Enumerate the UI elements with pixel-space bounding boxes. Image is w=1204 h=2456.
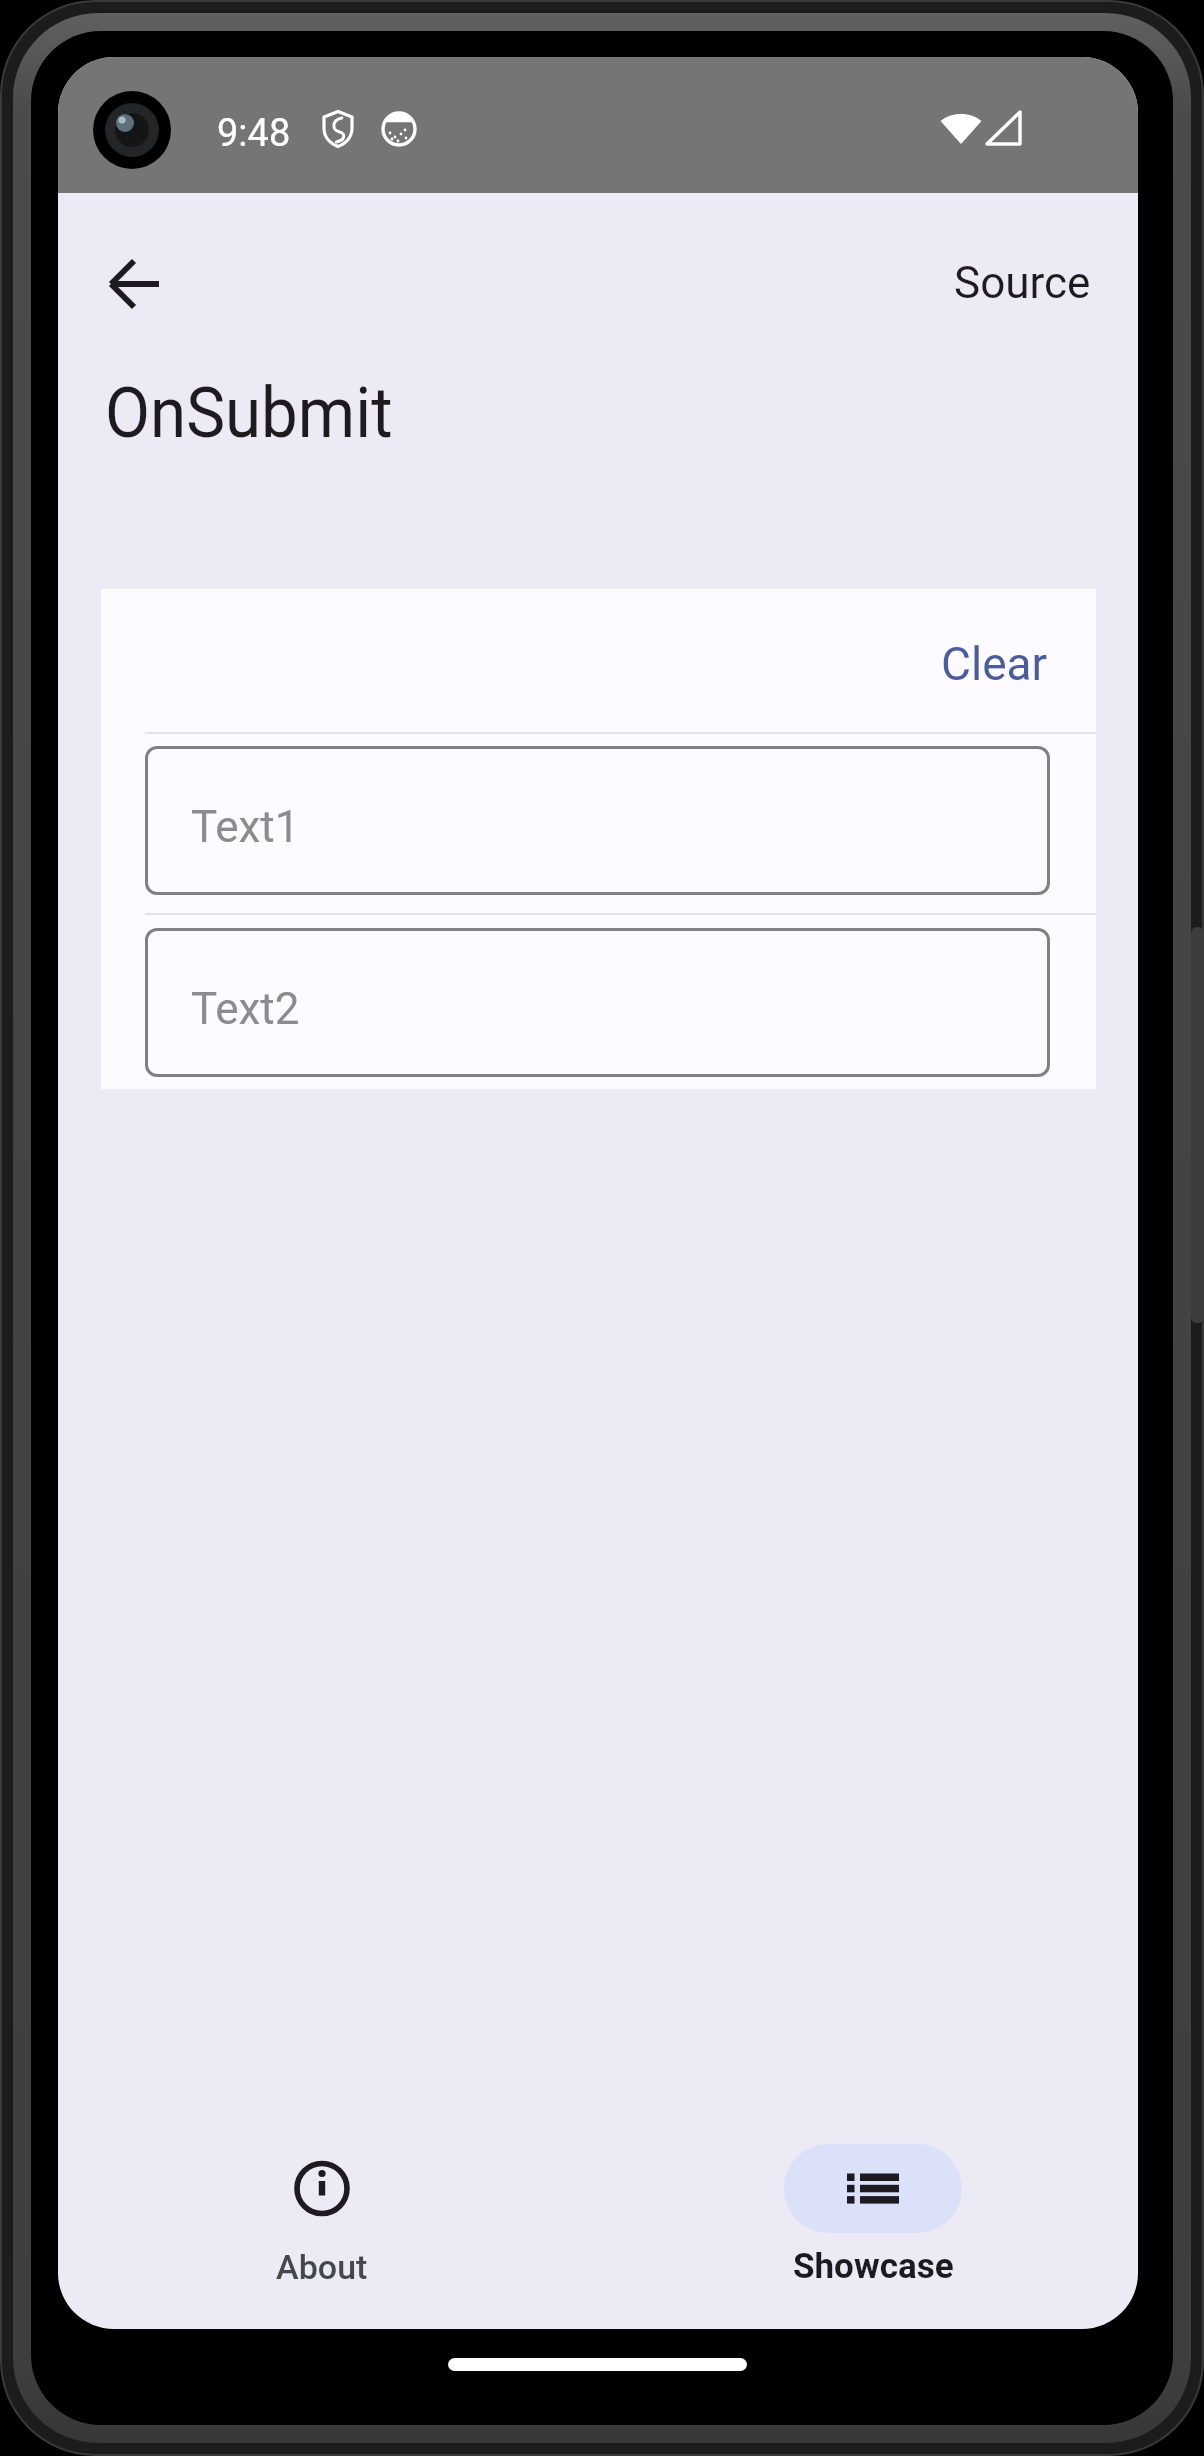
staticText: Source: [954, 257, 1091, 309]
staticText: 9:48: [217, 111, 291, 156]
staticText: Showcase: [793, 2246, 954, 2287]
staticText: Text2: [191, 983, 300, 1035]
button[interactable]: Text1: [145, 746, 1050, 895]
staticText: OnSubmit: [105, 372, 393, 454]
staticText: Clear: [941, 637, 1048, 691]
button[interactable]: Source: [791, 257, 1091, 309]
button[interactable]: [94, 243, 176, 325]
staticText: About: [276, 2247, 368, 2287]
button[interactable]: Text2: [145, 928, 1050, 1077]
button[interactable]: About: [202, 2137, 442, 2307]
button[interactable]: Showcase: [753, 2137, 993, 2307]
button[interactable]: Clear: [748, 637, 1048, 691]
staticText: Text1: [191, 801, 300, 853]
